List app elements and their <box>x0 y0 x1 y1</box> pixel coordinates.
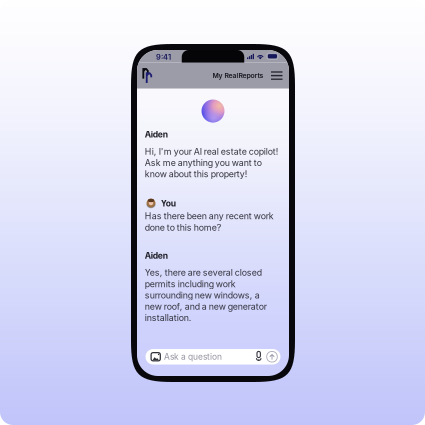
staticText: Yes, there are several closed <box>145 267 262 278</box>
button[interactable]: Ask a question <box>145 349 280 364</box>
staticText: My RealReports <box>212 71 263 80</box>
button[interactable]: RealReports <box>137 62 157 88</box>
staticText: know about this property! <box>145 169 248 179</box>
staticText: new roof, and a new generator <box>145 301 267 312</box>
staticText: Ask me anything you want to <box>145 157 262 168</box>
staticText: installation. <box>145 312 192 323</box>
staticText: Has there been any recent work <box>145 211 274 221</box>
staticText: 9:41 <box>156 52 171 61</box>
staticText: permits including work <box>145 279 236 289</box>
button[interactable]: Menu <box>263 62 289 88</box>
staticText: You <box>161 198 176 209</box>
staticText: done to this home? <box>145 222 221 233</box>
staticText: surrounding new windows, a <box>145 290 260 300</box>
staticText: Ask a question <box>164 352 222 362</box>
staticText: Aiden <box>145 250 168 261</box>
staticText: Aiden <box>145 129 168 140</box>
staticText: Hi, I'm your AI real estate copilot! <box>145 146 279 157</box>
